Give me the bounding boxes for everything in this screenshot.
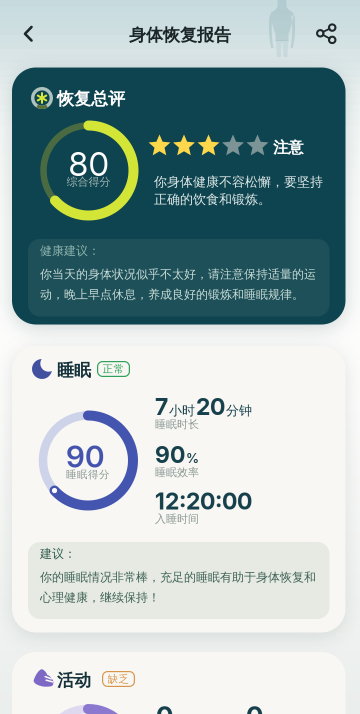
staticText: 注意 bbox=[273, 138, 303, 157]
staticText: 小时 bbox=[169, 403, 195, 419]
staticText: 80 bbox=[68, 144, 108, 183]
staticText: 20 bbox=[196, 393, 225, 420]
staticText: 0 bbox=[246, 700, 263, 714]
staticText: 睡眠效率 bbox=[155, 466, 199, 479]
staticText: 你身体健康不容松懈，要坚持 正确的饮食和锻炼。 bbox=[154, 174, 323, 207]
staticText: 90 bbox=[155, 441, 185, 468]
staticText: 健康建议： bbox=[40, 243, 100, 258]
staticText: 睡眠得分 bbox=[66, 468, 110, 481]
button[interactable]: Share bbox=[303, 11, 347, 55]
staticText: 正常 bbox=[102, 362, 124, 375]
staticText: 12:20:00 bbox=[155, 487, 252, 515]
staticText: % bbox=[186, 450, 199, 466]
staticText: 身体恢复报告 bbox=[129, 25, 231, 45]
staticText: 综合得分 bbox=[66, 175, 110, 188]
staticText: 建议： bbox=[40, 546, 76, 561]
staticText: 入睡时间 bbox=[155, 512, 199, 526]
staticText: 睡眠 bbox=[57, 360, 91, 381]
staticText: 活动 bbox=[57, 670, 91, 691]
staticText: 你的睡眠情况非常棒，充足的睡眠有助于身体恢复和 心理健康，继续保持！ bbox=[40, 570, 316, 605]
staticText: 缺乏 bbox=[107, 672, 129, 685]
staticText: 恢复总评 bbox=[57, 88, 125, 109]
staticText: 睡眠时长 bbox=[155, 418, 199, 431]
staticText: 90 bbox=[66, 439, 104, 474]
staticText: 分钟 bbox=[226, 403, 252, 419]
staticText: 7 bbox=[155, 393, 168, 420]
staticText: 0 bbox=[156, 700, 173, 714]
button[interactable]: Back bbox=[6, 11, 50, 55]
staticText: 你当天的身体状况似乎不太好，请注意保持适量的运 动，晚上早点休息，养成良好的锻炼… bbox=[40, 267, 316, 302]
